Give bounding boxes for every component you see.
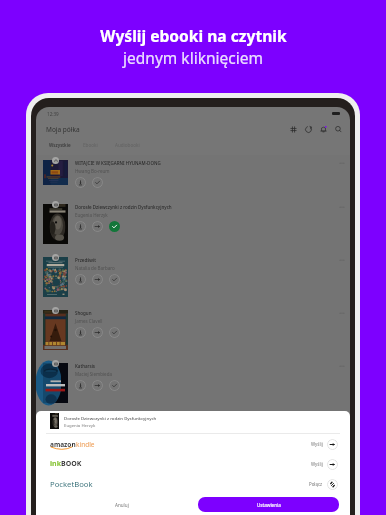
button[interactable]: amazon: [36, 434, 350, 454]
staticText: Natalia de Barbaro: [75, 265, 115, 271]
button[interactable]: Akcja: [75, 177, 86, 188]
staticText: Wyślij ebooki na czytnik: [100, 25, 287, 46]
staticText: Moja półka: [46, 125, 80, 134]
staticText: Dorosłe Dziewczynki z rodzin Dysfunkcyjn…: [75, 204, 172, 210]
staticText: Anuluj: [115, 502, 129, 508]
button[interactable]: Akcja: [92, 177, 103, 188]
button[interactable]: Więcej: [36, 199, 350, 252]
button[interactable]: Odśwież: [303, 124, 314, 135]
button[interactable]: Ustawienia: [198, 497, 339, 512]
button[interactable]: Akcja: [92, 221, 103, 232]
button[interactable]: ink: [36, 454, 350, 474]
button[interactable]: Akcja: [109, 274, 120, 285]
staticText: jednym kliknięciem: [123, 47, 263, 68]
staticText: Audiobooki: [115, 142, 140, 148]
staticText: WITAJCIE W KSIĘGARNI HYUNAM-DONG: [75, 160, 161, 166]
button[interactable]: Audiobooki: [113, 142, 142, 148]
button[interactable]: Ebooki: [81, 142, 100, 148]
button[interactable]: Akcja: [75, 380, 86, 391]
button[interactable]: Powiadomienia: [318, 124, 329, 135]
button[interactable]: Połącz: [327, 479, 338, 490]
button[interactable]: Akcja: [92, 274, 103, 285]
staticText: Katharsis: [75, 363, 96, 369]
button[interactable]: Więcej: [36, 252, 350, 305]
staticText: Hwang Bo-reum: [75, 168, 110, 174]
button[interactable]: Akcja: [92, 380, 103, 391]
button[interactable]: Skanuj: [288, 124, 299, 135]
staticText: Wyślij: [311, 441, 323, 447]
staticText: 12:39: [47, 111, 59, 117]
staticText: PocketBook: [50, 479, 93, 489]
staticText: Shogun: [75, 310, 92, 316]
staticText: Wszystkie: [49, 142, 71, 148]
staticText: Ebooki: [83, 142, 98, 148]
button[interactable]: Więcej: [36, 155, 350, 199]
staticText: Eugenia Herzyk: [75, 212, 108, 218]
staticText: BOOK: [61, 459, 82, 469]
button[interactable]: Akcja: [75, 327, 86, 338]
button[interactable]: Akcja: [109, 380, 120, 391]
button[interactable]: Akcja: [75, 221, 86, 232]
button[interactable]: Akcja: [75, 274, 86, 285]
staticText: ink: [50, 459, 61, 469]
button[interactable]: Akcja: [109, 327, 120, 338]
staticText: Eugenia Herzyk: [64, 422, 96, 428]
staticText: Połącz: [309, 481, 323, 487]
staticText: Dorosłe Dziewczynki z rodzin Dysfunkcyjn…: [64, 415, 157, 421]
button[interactable]: Wyślij: [327, 459, 338, 470]
button[interactable]: Akcja: [92, 327, 103, 338]
button[interactable]: Anuluj: [46, 497, 198, 512]
staticText: kindle: [76, 440, 95, 449]
button[interactable]: Więcej: [36, 358, 350, 411]
button[interactable]: Szukaj: [333, 124, 344, 135]
staticText: Przedświt: [75, 257, 96, 263]
button[interactable]: PocketBook: [36, 474, 350, 494]
staticText: amazon: [50, 440, 76, 449]
staticText: Maciej Siembieda: [75, 371, 112, 377]
staticText: James Clavell: [75, 318, 103, 324]
staticText: Wyślij: [311, 461, 323, 467]
button[interactable]: Wyślij: [327, 439, 338, 450]
button[interactable]: Akcja: [109, 221, 120, 232]
staticText: Ustawienia: [257, 502, 281, 508]
button[interactable]: Więcej: [36, 305, 350, 358]
button[interactable]: Wszystkie: [47, 142, 73, 148]
